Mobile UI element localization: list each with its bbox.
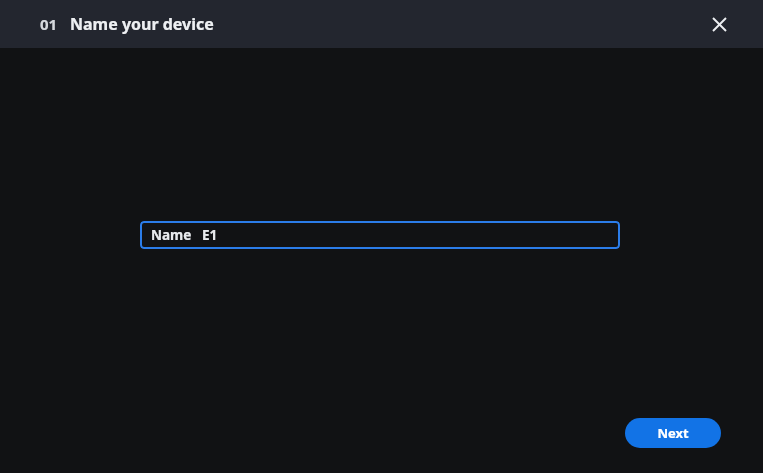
button[interactable]: Name bbox=[140, 221, 620, 249]
staticText: 01 bbox=[40, 14, 58, 34]
staticText: E1 bbox=[202, 226, 218, 244]
button[interactable]: Next bbox=[625, 418, 721, 448]
button[interactable]: Close bbox=[703, 8, 735, 40]
staticText: Name bbox=[151, 226, 192, 244]
staticText: Name your device bbox=[70, 13, 214, 35]
staticText: Next bbox=[657, 424, 689, 442]
